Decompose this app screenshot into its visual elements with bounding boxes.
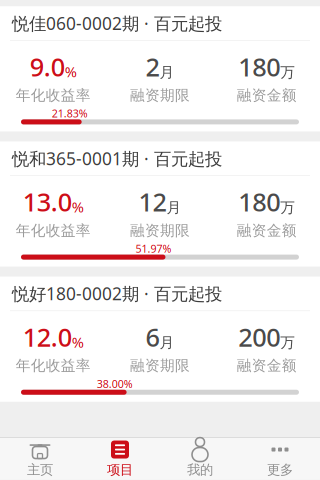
staticText: 融资期限 <box>130 357 190 375</box>
staticText: 我的 <box>187 462 213 478</box>
staticText: 21.83% <box>52 106 88 120</box>
staticText: 融资金额 <box>237 222 297 240</box>
button[interactable]: 项目 <box>80 438 160 480</box>
button[interactable]: 悦和365-0001期 · 百元起投 <box>0 141 320 267</box>
staticText: 融资金额 <box>237 357 297 375</box>
staticText: 月 <box>159 63 174 81</box>
staticText: 更多 <box>267 462 293 478</box>
staticText: 180 <box>238 50 280 83</box>
staticText: 悦和365-0001期 · 百元起投 <box>12 147 222 170</box>
button[interactable]: 悦佳060-0002期 · 百元起投 <box>0 6 320 131</box>
staticText: 悦好180-0002期 · 百元起投 <box>12 282 222 305</box>
staticText: 12.0 <box>23 320 72 354</box>
staticText: 9.0 <box>30 50 65 83</box>
staticText: 6 <box>145 320 159 354</box>
staticText: 年化收益率 <box>16 222 91 240</box>
staticText: 年化收益率 <box>16 357 91 375</box>
staticText: 200 <box>238 320 280 354</box>
button[interactable]: 我的 <box>160 438 240 480</box>
staticText: 51.97% <box>135 241 171 256</box>
staticText: 2 <box>145 50 159 83</box>
staticText: 万 <box>280 334 295 352</box>
staticText: 融资金额 <box>237 86 297 104</box>
staticText: % <box>72 332 84 352</box>
button[interactable]: 悦好180-0002期 · 百元起投 <box>0 277 320 402</box>
staticText: 万 <box>280 198 295 216</box>
staticText: 13.0 <box>23 185 72 218</box>
button[interactable]: 主页 <box>0 438 80 480</box>
staticText: 月 <box>159 334 174 352</box>
staticText: 年化收益率 <box>16 86 91 104</box>
staticText: 悦佳060-0002期 · 百元起投 <box>12 12 222 35</box>
staticText: 主页 <box>27 462 53 478</box>
button[interactable]: 更多 <box>240 438 320 480</box>
staticText: 180 <box>238 185 280 218</box>
staticText: 月 <box>166 198 181 216</box>
staticText: 融资期限 <box>130 222 190 240</box>
staticText: 融资期限 <box>130 86 190 104</box>
staticText: % <box>72 197 84 217</box>
staticText: 项目 <box>107 462 133 478</box>
staticText: 万 <box>280 63 295 81</box>
staticText: % <box>65 62 77 81</box>
staticText: 12 <box>138 185 166 218</box>
staticText: 38.00% <box>97 377 133 391</box>
